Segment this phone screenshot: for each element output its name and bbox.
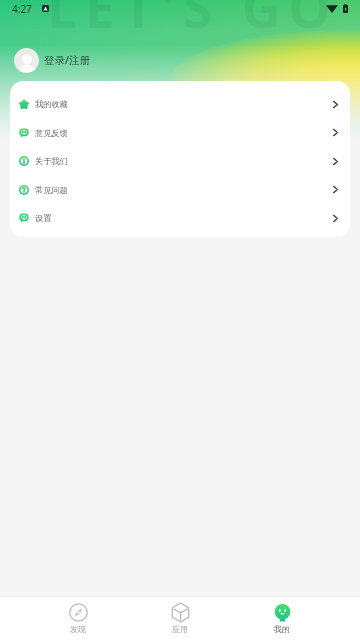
button[interactable]: 常见问题 — [10, 175, 350, 204]
staticText: 常见问题 — [35, 185, 68, 195]
button[interactable]: 我的 — [231, 603, 333, 634]
staticText: 关于我们 — [35, 156, 68, 166]
staticText: 我的 — [274, 624, 290, 634]
staticText: 设置 — [35, 213, 52, 223]
staticText: 登录/注册 — [44, 53, 91, 67]
staticText: 4:27 — [12, 2, 32, 16]
button[interactable]: 发现 — [27, 603, 129, 634]
button[interactable]: 应用 — [129, 603, 231, 634]
button[interactable]: 意见反馈 — [10, 118, 350, 147]
button[interactable]: 设置 — [10, 204, 350, 232]
staticText: 我的收藏 — [35, 99, 68, 109]
staticText: 应用 — [172, 624, 188, 634]
button[interactable]: 登录/注册 — [14, 47, 360, 73]
staticText: LET'S GO — [47, 0, 339, 44]
staticText: 意见反馈 — [35, 128, 68, 138]
button[interactable]: 我的收藏 — [10, 90, 350, 118]
button[interactable]: 关于我们 — [10, 147, 350, 175]
staticText: 发现 — [70, 624, 86, 634]
